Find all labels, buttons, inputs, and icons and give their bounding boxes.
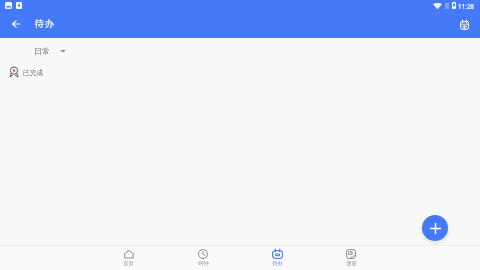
button[interactable]: 时钟 [166,246,240,270]
staticText: 便签 [346,260,357,267]
staticText: 首页 [123,260,134,267]
staticText: 待办 [272,260,283,267]
button[interactable]: 已完成 [0,62,480,80]
button[interactable]: Add [422,215,448,241]
staticText: 时钟 [198,260,209,267]
button[interactable]: 便签 [314,246,388,270]
staticText: 已完成 [23,68,44,77]
button[interactable]: 首页 [91,246,166,270]
staticText: 日常 [34,46,50,56]
button[interactable]: 待办 [240,246,314,270]
button[interactable]: 日常 [30,43,70,59]
button[interactable]: Back [6,14,26,34]
staticText: 待办 [35,18,54,30]
button[interactable]: Calendar [454,14,474,34]
staticText: 11:28 [458,2,474,10]
